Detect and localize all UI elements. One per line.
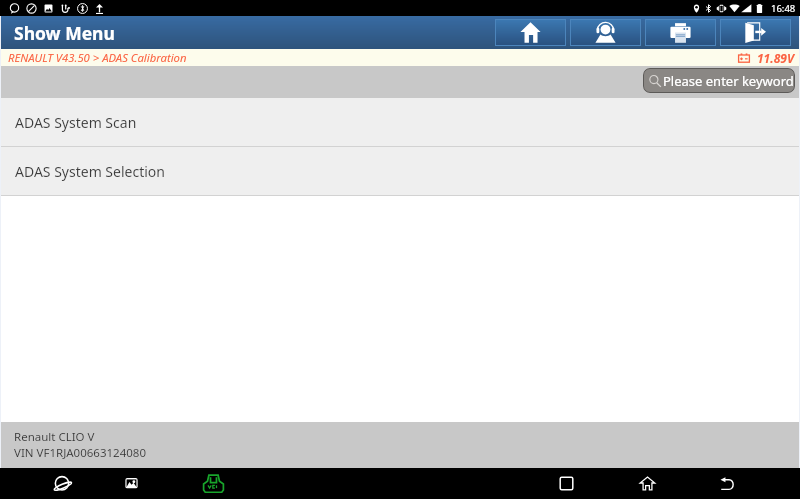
button[interactable]: Exit [720, 19, 791, 46]
button[interactable]: VCI [194, 468, 232, 499]
button[interactable]: Gallery [114, 468, 148, 499]
staticText: ADAS System Selection [15, 162, 165, 181]
button[interactable]: Home [495, 19, 566, 46]
staticText: Show Menu [14, 21, 115, 45]
button[interactable]: ADAS System Scan [0, 98, 800, 147]
button[interactable]: ADAS System Selection [0, 147, 800, 196]
button[interactable]: Recents [549, 468, 583, 499]
staticText: Please enter keyword [663, 72, 794, 90]
staticText: ADAS System Scan [15, 113, 137, 132]
staticText: RENAULT V43.50 > ADAS Calibration [8, 50, 187, 65]
staticText: 11.89V [757, 50, 794, 66]
button[interactable]: Support [570, 19, 641, 46]
button[interactable]: Back [710, 468, 744, 499]
button[interactable]: Please enter keyword [643, 68, 795, 93]
button[interactable]: Home [630, 468, 664, 499]
staticText: 16:48 [771, 2, 796, 15]
button[interactable]: Print [645, 19, 716, 46]
button[interactable]: Browser [45, 468, 79, 499]
staticText: Renault CLIO V VIN VF1RJA00663124080 [14, 429, 146, 461]
